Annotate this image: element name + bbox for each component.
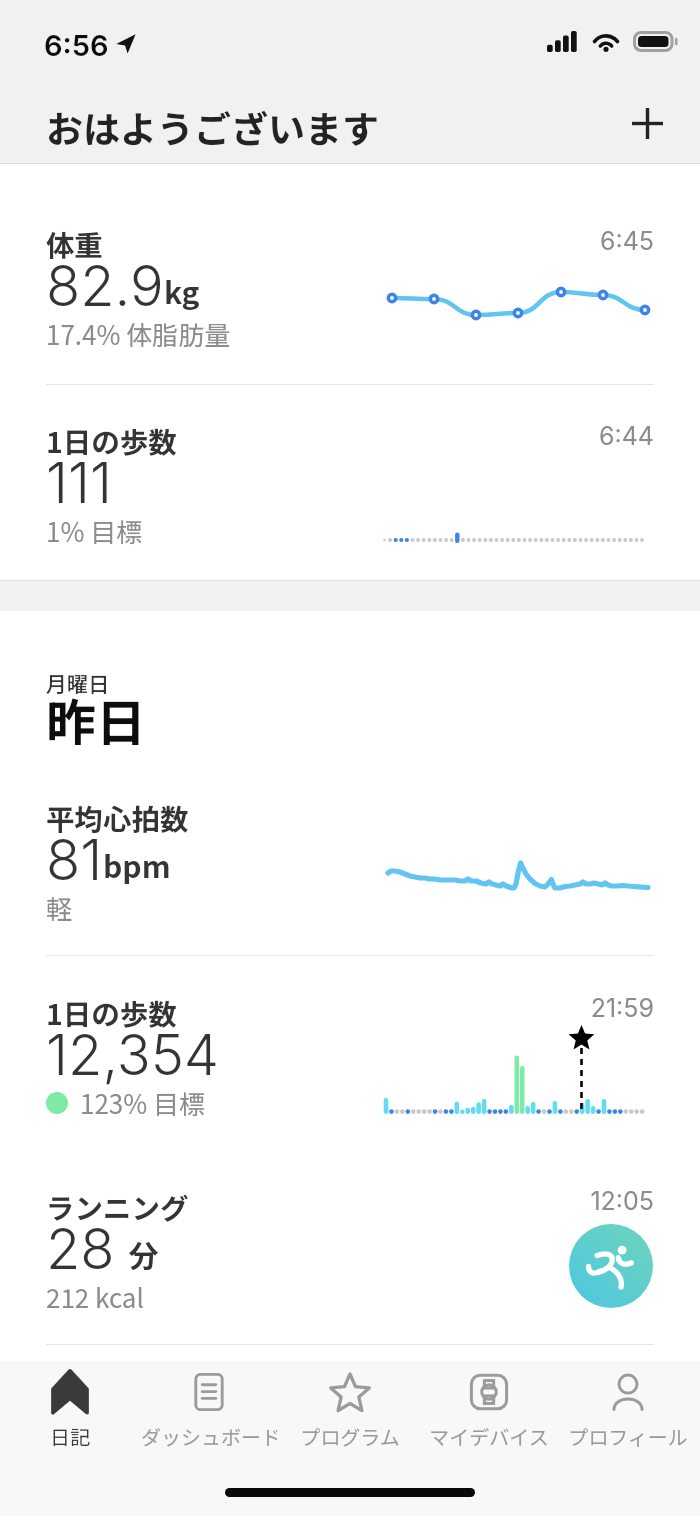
staticText: 28 xyxy=(46,1215,115,1283)
staticText: ダッシュボード xyxy=(141,1422,277,1451)
button[interactable] xyxy=(0,164,700,384)
staticText: ランニング xyxy=(46,1186,189,1227)
button[interactable]: Add xyxy=(619,95,676,152)
button[interactable] xyxy=(0,385,700,580)
staticText: マイデバイス xyxy=(429,1422,549,1451)
staticText: 12:05 xyxy=(590,1186,654,1216)
staticText: プログラム xyxy=(300,1422,400,1451)
staticText: 111 xyxy=(46,449,113,517)
staticText: 6:56 xyxy=(44,28,109,63)
button[interactable]: プログラム xyxy=(282,1366,418,1458)
staticText: 昨日 xyxy=(46,683,146,755)
staticText: 21:59 xyxy=(590,993,654,1023)
staticText: 1日の歩数 xyxy=(46,992,177,1033)
staticText: 82.9 xyxy=(46,252,164,320)
other: Running activity xyxy=(569,1224,653,1308)
staticText: 17.4% 体脂肪量 xyxy=(46,315,231,353)
staticText: プロフィール xyxy=(568,1422,688,1451)
staticText: 123% 目標 xyxy=(80,1084,206,1122)
staticText: おはようございます xyxy=(46,100,379,154)
staticText: 月曜日 xyxy=(46,668,109,698)
button[interactable]: プロフィール xyxy=(560,1366,696,1458)
staticText: 6:44 xyxy=(598,421,654,451)
staticText: 12,354 xyxy=(46,1021,220,1089)
staticText: 日記 xyxy=(50,1422,90,1451)
button[interactable] xyxy=(0,780,700,955)
staticText: 212 kcal xyxy=(46,1278,144,1316)
staticText: 体重 xyxy=(46,223,104,264)
staticText: 6:45 xyxy=(599,226,654,256)
staticText: kg xyxy=(164,269,200,312)
staticText: 分 xyxy=(115,1232,159,1275)
staticText: 1% 目標 xyxy=(46,512,143,550)
staticText: 平均心拍数 xyxy=(46,797,189,838)
button[interactable] xyxy=(0,956,700,1146)
staticText: 81 xyxy=(46,826,103,894)
staticText: 1日の歩数 xyxy=(46,420,177,461)
button[interactable]: 日記 xyxy=(2,1366,138,1458)
button[interactable]: ダッシュボード xyxy=(141,1366,277,1458)
staticText: bpm xyxy=(103,843,171,886)
button[interactable] xyxy=(0,1147,700,1342)
button[interactable]: マイデバイス xyxy=(421,1366,557,1458)
staticText: 軽 xyxy=(46,889,73,927)
